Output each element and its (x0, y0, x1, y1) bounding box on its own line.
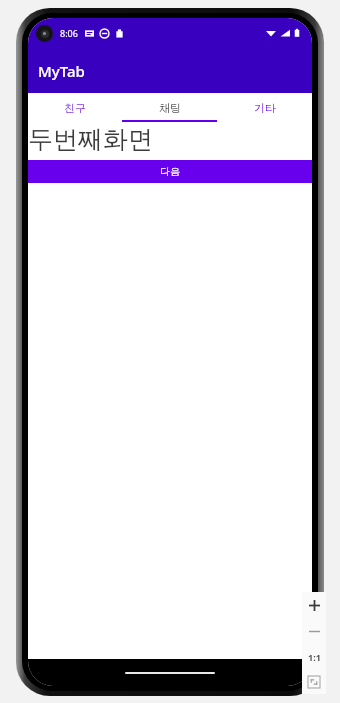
button[interactable]: Zoom in (302, 592, 326, 618)
button[interactable]: 1:1 (302, 644, 326, 670)
button[interactable]: Fit to screen (302, 670, 326, 694)
button[interactable]: 친구 (28, 93, 122, 122)
staticText: MyTab (38, 61, 85, 81)
button[interactable]: 채팅 (122, 93, 217, 122)
staticText: 채팅 (159, 101, 181, 115)
button[interactable]: Zoom out (302, 618, 326, 644)
button[interactable]: 기타 (217, 93, 312, 122)
staticText: 8:06 (60, 27, 78, 39)
staticText: 친구 (64, 101, 86, 115)
staticText: 두번째화면 (28, 124, 153, 155)
staticText: 다음 (160, 165, 180, 178)
staticText: 기타 (254, 101, 276, 115)
button[interactable]: 다음 (28, 160, 312, 183)
staticText: 1:1 (308, 651, 321, 663)
